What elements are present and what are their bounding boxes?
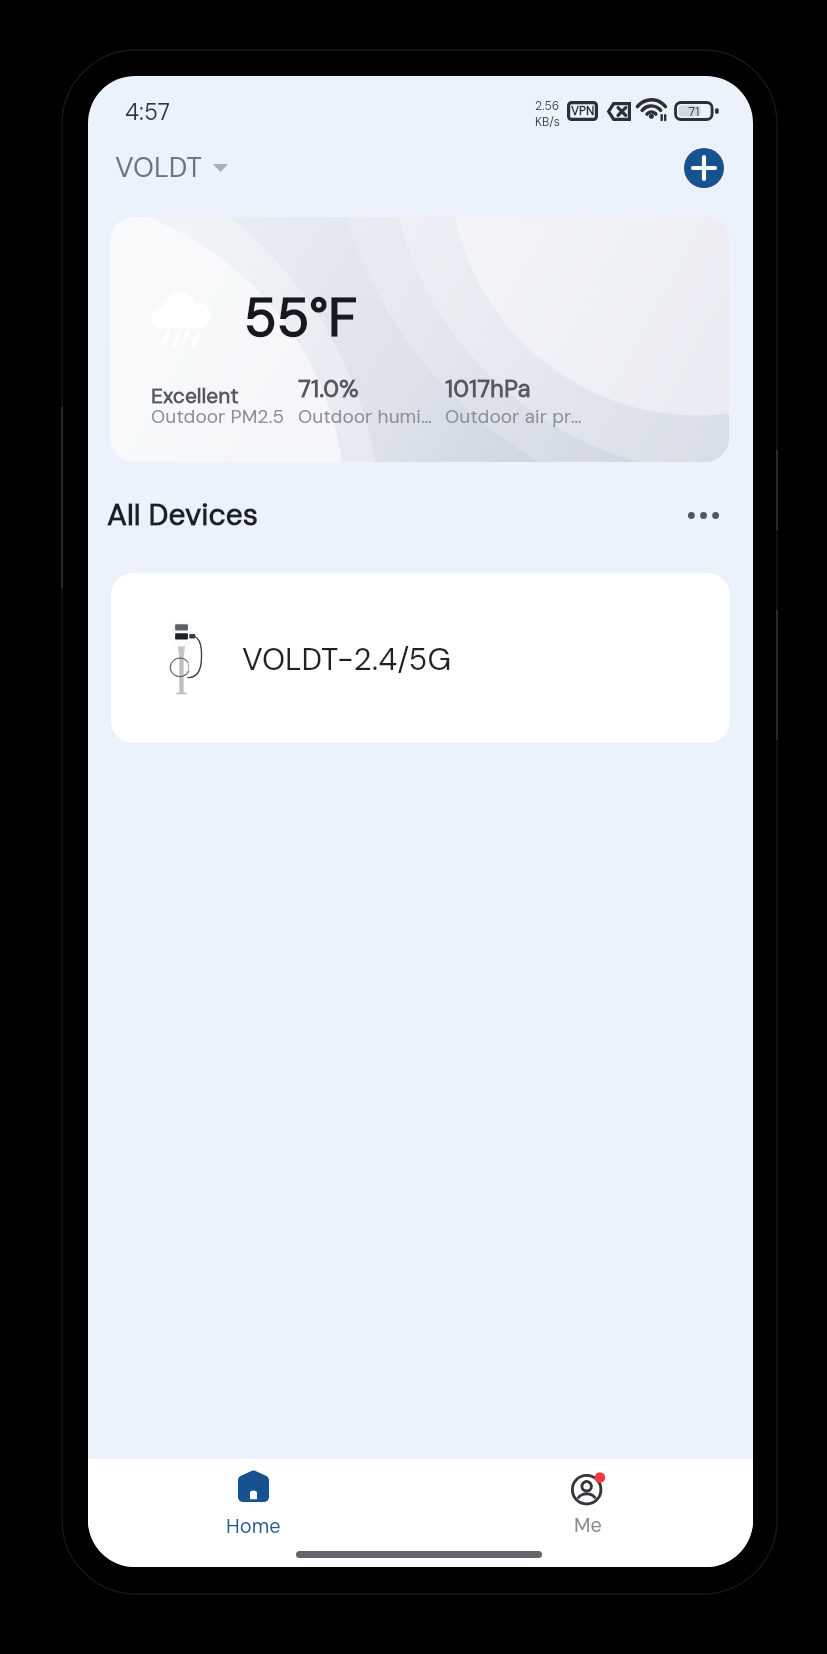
staticText: 71.0% xyxy=(298,373,359,404)
staticText: VOLDT xyxy=(115,149,203,185)
staticText: 2.56 xyxy=(535,98,560,114)
button[interactable]: 55°F xyxy=(110,217,729,462)
staticText: Me xyxy=(574,1512,602,1538)
staticText: 4:57 xyxy=(125,97,170,127)
button[interactable]: Home xyxy=(188,1464,318,1548)
staticText: Outdoor PM2.5 xyxy=(151,404,285,429)
staticText: 55°F xyxy=(244,282,358,352)
button[interactable]: VOLDT xyxy=(110,144,233,190)
staticText: Excellent xyxy=(151,382,239,409)
button[interactable]: Me xyxy=(523,1464,653,1548)
staticText: VOLDT-2.4/5G xyxy=(242,639,452,679)
staticText: VPN xyxy=(571,103,595,119)
button[interactable]: Add device xyxy=(684,148,724,188)
button[interactable]: VOLDT-2.4/5G xyxy=(111,573,730,743)
staticText: Home xyxy=(226,1513,281,1539)
button[interactable]: More options xyxy=(677,491,729,539)
staticText: All Devices xyxy=(107,495,258,534)
staticText: 71 xyxy=(688,103,700,120)
staticText: Outdoor humi… xyxy=(298,404,432,429)
staticText: KB/s xyxy=(535,114,560,130)
staticText: Outdoor air pr… xyxy=(445,404,582,429)
staticText: 1017hPa xyxy=(445,373,531,404)
